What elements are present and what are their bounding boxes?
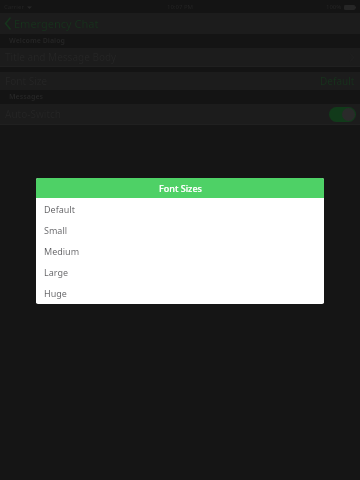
staticText: Large bbox=[44, 266, 69, 278]
button[interactable]: Default bbox=[36, 198, 324, 219]
button[interactable]: Medium bbox=[36, 240, 324, 261]
button[interactable]: Huge bbox=[36, 282, 324, 303]
button[interactable]: Auto-Switch toggle, on bbox=[329, 107, 356, 122]
staticText: Font Sizes bbox=[159, 182, 202, 194]
staticText: Welcome Dialog bbox=[9, 36, 65, 46]
staticText: Small bbox=[44, 224, 68, 236]
button[interactable]: Large bbox=[36, 261, 324, 282]
button[interactable]: Auto-Switch bbox=[0, 104, 360, 124]
staticText: Messages bbox=[9, 92, 44, 102]
staticText: Medium bbox=[44, 245, 80, 257]
staticText: Emergency Chat bbox=[14, 16, 99, 31]
staticText: Default bbox=[320, 74, 355, 88]
staticText: Default bbox=[44, 203, 75, 215]
staticText: Huge bbox=[44, 287, 67, 299]
button[interactable]: Small bbox=[36, 219, 324, 240]
button[interactable]: Emergency Chat bbox=[0, 13, 107, 34]
